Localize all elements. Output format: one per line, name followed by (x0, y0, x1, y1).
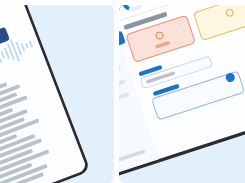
button[interactable]: Mobile app preview (0, 5, 114, 183)
button[interactable]: Tablet dashboard preview (119, 5, 245, 183)
